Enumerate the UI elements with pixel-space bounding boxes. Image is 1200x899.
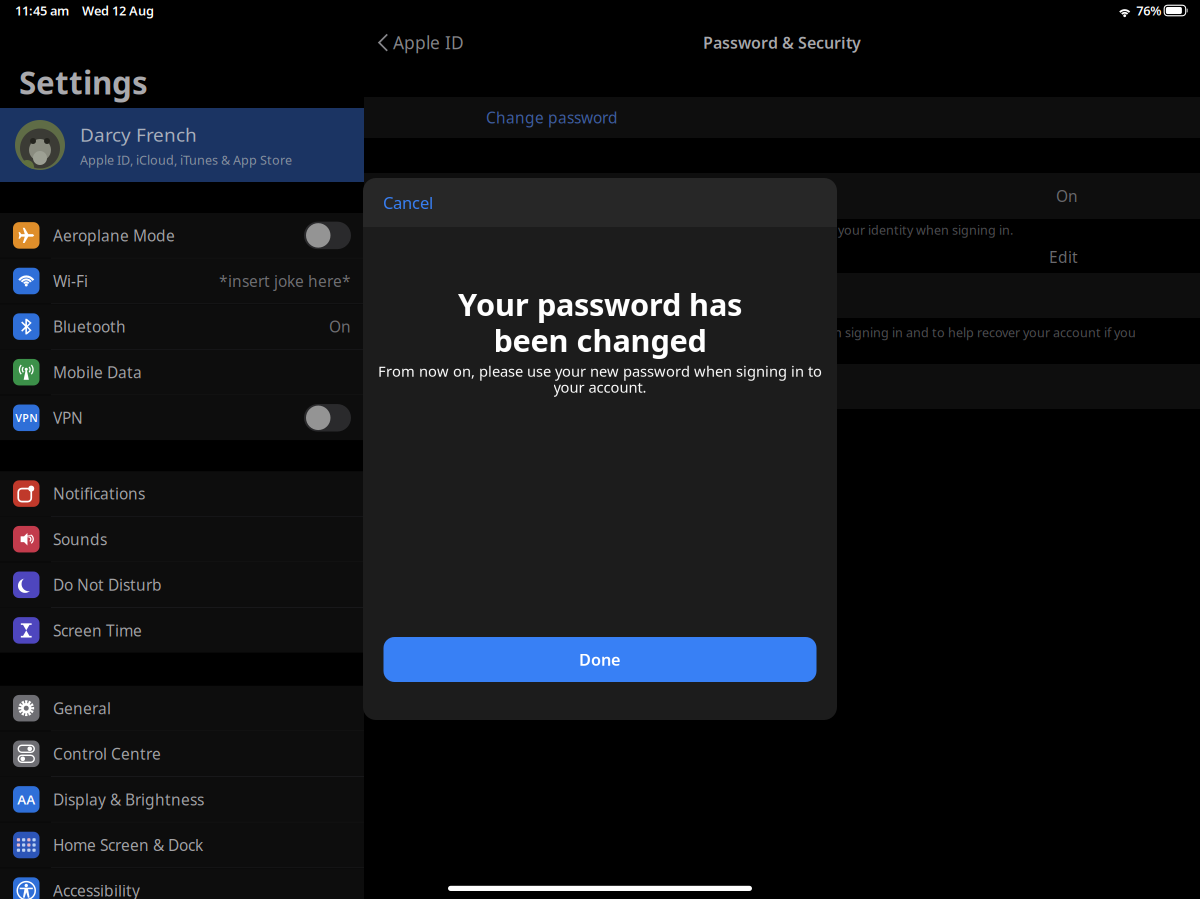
button[interactable]: Change password <box>364 97 1200 138</box>
staticText: been changed <box>493 320 706 360</box>
button[interactable]: General <box>0 686 364 731</box>
staticText: VPN <box>53 407 83 428</box>
staticText: *insert joke here* <box>219 270 351 292</box>
button[interactable]: Control Centre <box>0 731 364 776</box>
staticText: Settings <box>19 61 148 104</box>
staticText: Home Screen & Dock <box>53 834 203 856</box>
staticText: 76% <box>1136 2 1161 19</box>
button[interactable]: Aeroplane Mode <box>0 213 364 258</box>
staticText: AA <box>17 790 35 808</box>
staticText: VPN <box>15 411 37 425</box>
staticText: Your password has <box>458 284 742 324</box>
staticText: General <box>53 698 111 719</box>
staticText: Change password <box>486 107 618 128</box>
staticText: Edit <box>1049 246 1078 268</box>
button[interactable]: Screen Time <box>0 608 364 653</box>
staticText: Cancel <box>383 191 433 214</box>
staticText: Password & Security <box>703 32 861 53</box>
button[interactable]: Do Not Disturb <box>0 562 364 607</box>
staticText: Screen Time <box>53 620 142 641</box>
staticText: Apple ID <box>393 31 464 54</box>
button[interactable]: Notifications <box>0 471 364 516</box>
staticText: Accessibility <box>53 880 140 899</box>
staticText: +61 400 000 000 <box>486 285 606 306</box>
staticText: Control Centre <box>53 743 161 764</box>
button[interactable]: AA <box>0 777 364 822</box>
staticText: Do Not Disturb <box>53 574 162 595</box>
button[interactable]: Done <box>383 637 816 682</box>
staticText: Apple ID, iCloud, iTunes & App Store <box>80 151 292 168</box>
button[interactable]: Mobile Data <box>0 350 364 395</box>
staticText: On <box>329 316 351 337</box>
staticText: Bluetooth <box>53 316 126 337</box>
button[interactable]: Home Screen & Dock <box>0 823 364 867</box>
staticText: Done <box>579 648 621 671</box>
staticText: On <box>1056 185 1078 207</box>
staticText: Notifications <box>53 483 145 504</box>
staticText: Mobile Data <box>53 362 142 383</box>
button[interactable]: Apple ID <box>368 23 473 62</box>
staticText: From now on, please use your new passwor… <box>378 361 822 381</box>
staticText: 11:45 am <box>15 2 69 19</box>
button[interactable]: Cancel <box>363 178 449 227</box>
button[interactable]: Accessibility <box>0 868 364 899</box>
staticText: Account Recovery <box>486 376 615 397</box>
staticText: Wed 12 Aug <box>82 2 154 19</box>
staticText: your account. <box>553 377 646 397</box>
button[interactable]: VPN <box>0 395 364 440</box>
staticText: Aeroplane Mode <box>53 225 175 246</box>
button[interactable]: Bluetooth <box>0 304 364 349</box>
staticText: Display & Brightness <box>53 789 204 810</box>
staticText: Your trusted devices and phone numbers a… <box>486 221 1013 239</box>
staticText: Sounds <box>53 529 107 550</box>
staticText: A trusted phone number is used to verify… <box>486 324 1136 358</box>
button[interactable]: Wi-Fi <box>0 259 364 303</box>
button[interactable]: Darcy French <box>0 108 364 182</box>
staticText: Wi-Fi <box>53 270 88 292</box>
button[interactable]: Sounds <box>0 517 364 562</box>
staticText: Darcy French <box>80 122 197 147</box>
